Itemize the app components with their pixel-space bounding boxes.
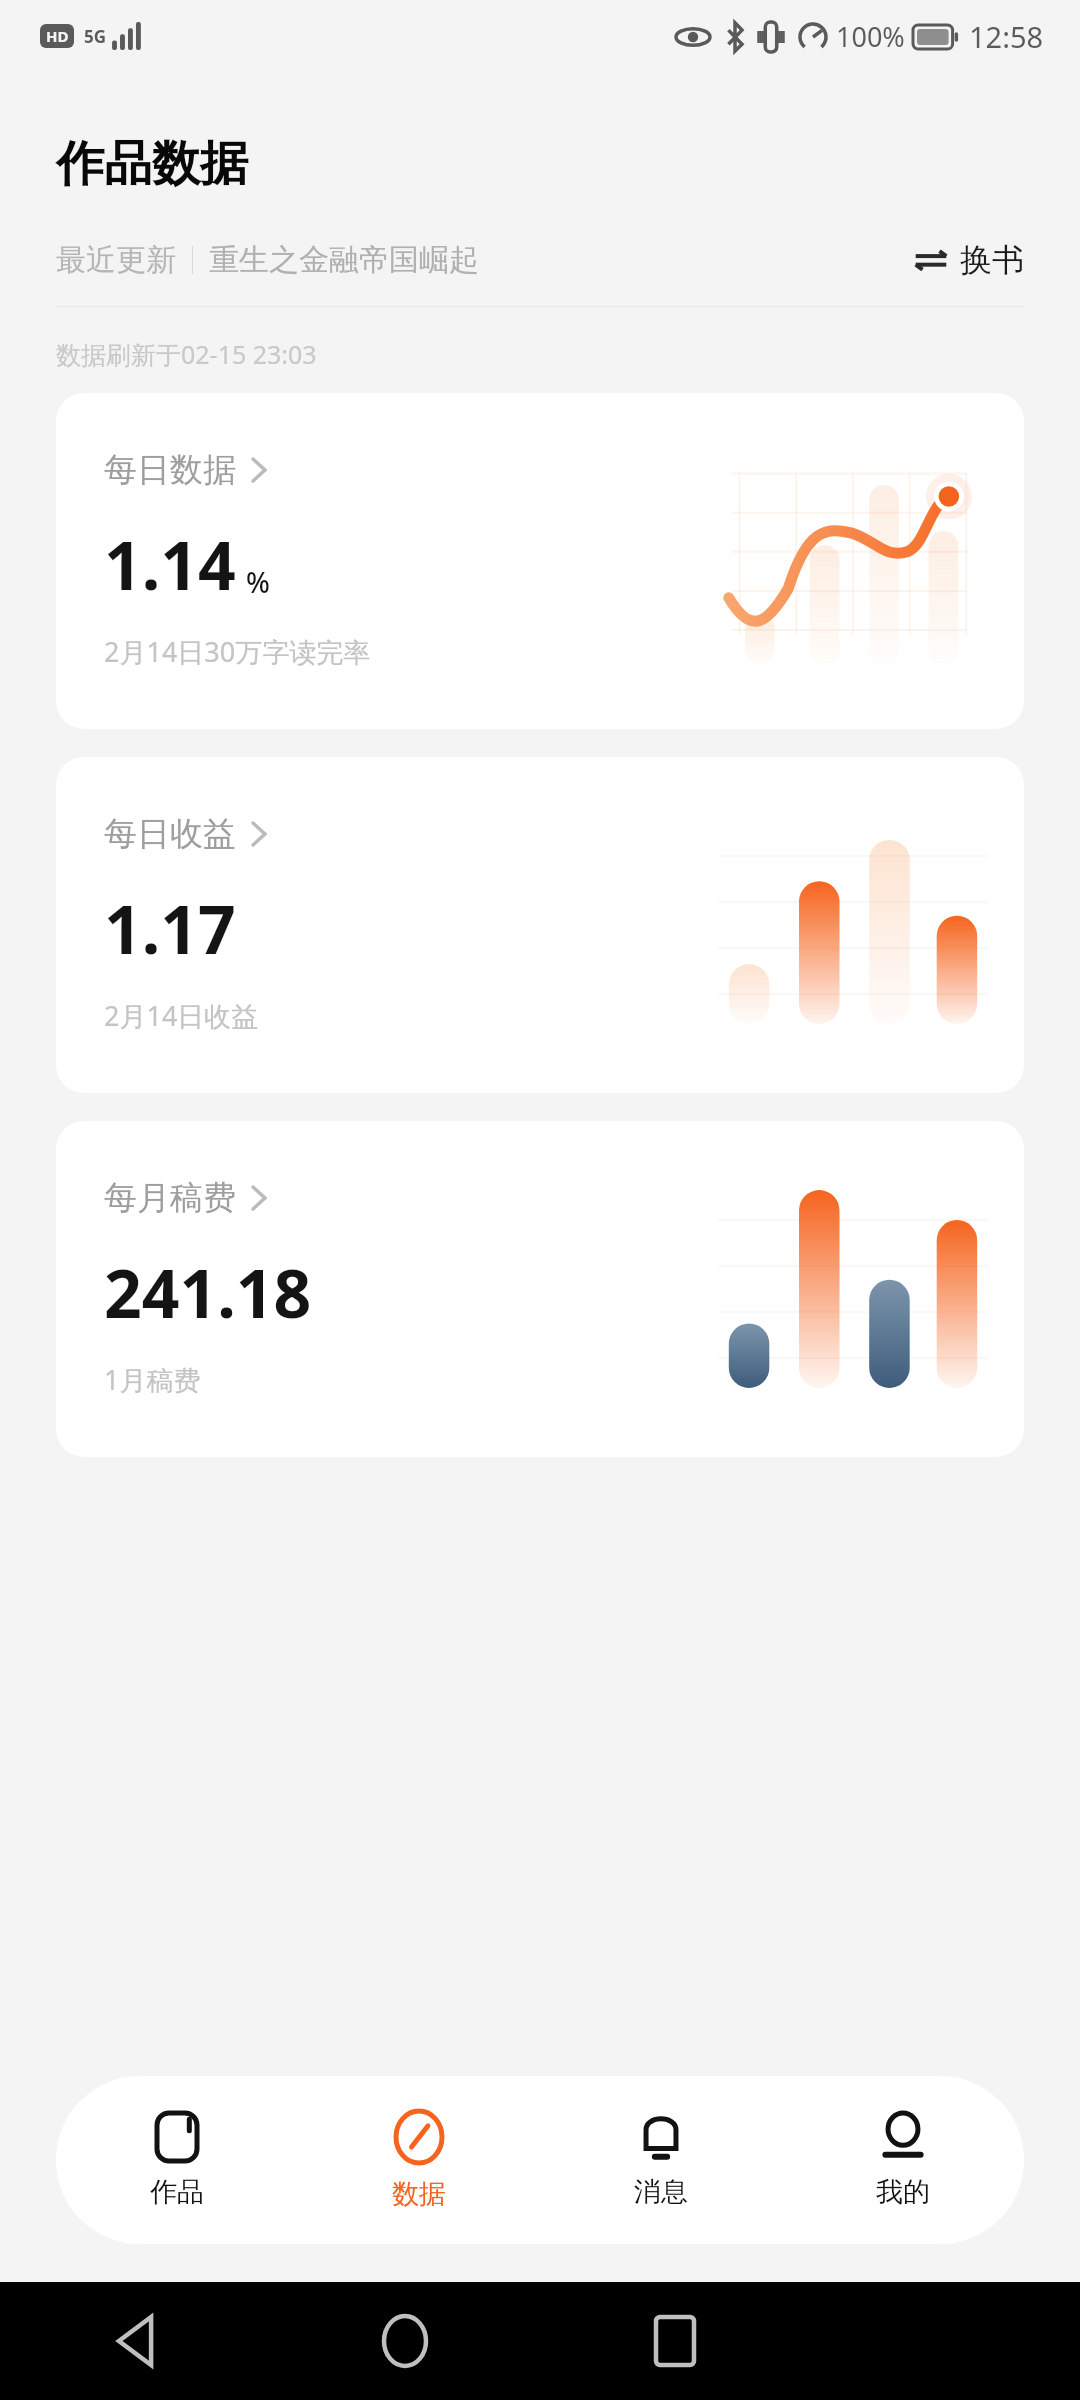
button[interactable]: 每月稿费 <box>56 1121 1024 1457</box>
staticText: 我的 <box>876 2175 930 2209</box>
staticText: 每月稿费 <box>104 1177 236 1219</box>
button[interactable]: 每日数据 <box>56 393 1024 729</box>
button[interactable]: 每日收益 <box>56 757 1024 1093</box>
staticText: 5G <box>84 25 107 48</box>
button[interactable]: 作品 <box>56 2076 298 2244</box>
staticText: HD <box>46 26 69 46</box>
staticText: 消息 <box>634 2175 688 2209</box>
button[interactable]: 最近更新 <box>56 241 479 279</box>
staticText: 1月稿费 <box>104 1361 201 1398</box>
button[interactable]: 数据 <box>298 2076 540 2244</box>
staticText: 数据 <box>392 2177 446 2211</box>
staticText: 100% <box>836 18 905 55</box>
staticText: 1.14 <box>104 519 236 609</box>
button[interactable]: 我的 <box>782 2076 1024 2244</box>
staticText: 12:58 <box>969 17 1044 56</box>
staticText: 作品 <box>150 2175 204 2209</box>
staticText: 2月14日30万字读完率 <box>104 633 371 670</box>
staticText: 最近更新 <box>56 241 176 279</box>
staticText: 241.18 <box>104 1247 312 1337</box>
staticText: 重生之金融帝国崛起 <box>209 241 479 279</box>
button[interactable]: Back <box>0 2282 270 2400</box>
staticText: % <box>246 563 270 601</box>
staticText: 2月14日收益 <box>104 997 259 1034</box>
staticText: 换书 <box>960 240 1024 280</box>
staticText: 数据刷新于02-15 23:03 <box>56 337 317 371</box>
button[interactable]: Home <box>270 2282 540 2400</box>
staticText: 每日数据 <box>104 449 236 491</box>
staticText: 1.17 <box>104 883 236 973</box>
staticText: 每日收益 <box>104 813 236 855</box>
staticText: 作品数据 <box>56 134 248 194</box>
button[interactable]: Recent apps <box>540 2282 810 2400</box>
button[interactable]: 换书 <box>914 240 1024 280</box>
button[interactable]: 消息 <box>540 2076 782 2244</box>
